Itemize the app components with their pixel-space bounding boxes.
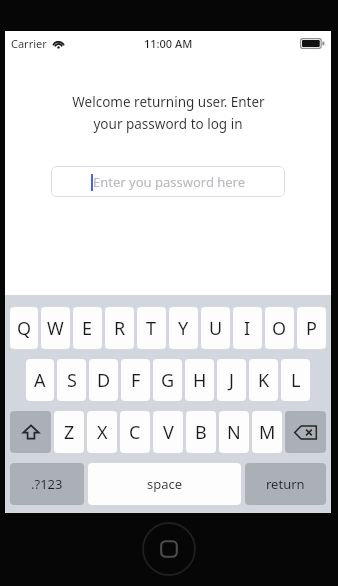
button[interactable]: Backspace <box>285 411 326 453</box>
staticText: Carrier <box>11 36 47 51</box>
button[interactable]: H <box>185 359 214 401</box>
staticText: D <box>97 368 111 393</box>
button[interactable]: U <box>201 307 230 349</box>
button[interactable]: B <box>186 411 216 453</box>
staticText: I <box>244 316 251 341</box>
button[interactable]: Z <box>54 411 84 453</box>
button[interactable]: L <box>281 359 310 401</box>
button[interactable]: Home <box>141 521 197 577</box>
button[interactable]: X <box>87 411 117 453</box>
button[interactable]: space <box>88 463 241 505</box>
button[interactable]: Y <box>169 307 198 349</box>
button[interactable]: E <box>73 307 102 349</box>
button[interactable]: F <box>121 359 150 401</box>
button[interactable]: Shift <box>10 411 51 453</box>
button[interactable]: .?123 <box>10 463 84 505</box>
button[interactable]: J <box>217 359 246 401</box>
button[interactable]: W <box>41 307 70 349</box>
button[interactable]: G <box>153 359 182 401</box>
staticText: S <box>67 368 77 393</box>
staticText: A <box>34 368 46 393</box>
button[interactable]: R <box>105 307 134 349</box>
staticText: space <box>147 475 183 493</box>
button[interactable]: I <box>233 307 262 349</box>
staticText: P <box>306 316 317 341</box>
button[interactable]: D <box>89 359 118 401</box>
button[interactable]: Enter you password here <box>51 166 285 197</box>
button[interactable]: C <box>120 411 150 453</box>
staticText: R <box>114 316 126 341</box>
staticText: X <box>97 420 108 445</box>
staticText: Q <box>17 316 32 341</box>
staticText: .?123 <box>31 475 63 493</box>
staticText: M <box>259 420 276 445</box>
staticText: your password to log in <box>93 115 243 133</box>
staticText: L <box>291 368 301 393</box>
staticText: O <box>272 316 287 341</box>
button[interactable]: O <box>265 307 294 349</box>
staticText: 11:00 AM <box>144 36 193 51</box>
button[interactable]: N <box>219 411 249 453</box>
staticText: B <box>195 420 207 445</box>
staticText: Welcome returning user. Enter <box>72 93 265 111</box>
staticText: return <box>266 475 305 493</box>
staticText: Enter you password here <box>93 173 246 191</box>
staticText: J <box>229 368 234 393</box>
button[interactable]: T <box>137 307 166 349</box>
staticText: H <box>193 368 207 393</box>
staticText: Y <box>178 316 189 341</box>
staticText: T <box>146 316 157 341</box>
staticText: E <box>82 316 93 341</box>
staticText: U <box>209 316 223 341</box>
staticText: V <box>163 420 174 445</box>
button[interactable]: V <box>153 411 183 453</box>
button[interactable]: S <box>57 359 86 401</box>
button[interactable]: return <box>245 463 326 505</box>
staticText: F <box>131 368 141 393</box>
button[interactable]: K <box>249 359 278 401</box>
button[interactable]: A <box>26 359 54 401</box>
button[interactable]: P <box>297 307 326 349</box>
button[interactable]: M <box>252 411 282 453</box>
staticText: W <box>47 316 64 341</box>
staticText: Z <box>64 420 75 445</box>
staticText: G <box>161 368 175 393</box>
staticText: K <box>258 368 270 393</box>
staticText: C <box>129 420 141 445</box>
staticText: N <box>227 420 241 445</box>
button[interactable]: Q <box>10 307 38 349</box>
